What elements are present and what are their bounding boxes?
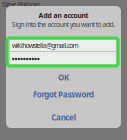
- button[interactable]: Forgot Password: [6, 87, 121, 102]
- staticText: Add an account: [38, 11, 88, 20]
- staticText: Forgot Password: [33, 89, 94, 100]
- staticText: Sign into the account you want to add.: [12, 20, 115, 29]
- staticText: Steve Bolinger: [2, 0, 41, 9]
- button[interactable]: Cancel: [6, 110, 121, 125]
- staticText: wikihowstella@gmail.com: [12, 41, 79, 50]
- staticText: Cancel: [51, 112, 76, 123]
- button[interactable]: OK: [6, 70, 121, 85]
- staticText: OK: [58, 72, 69, 83]
